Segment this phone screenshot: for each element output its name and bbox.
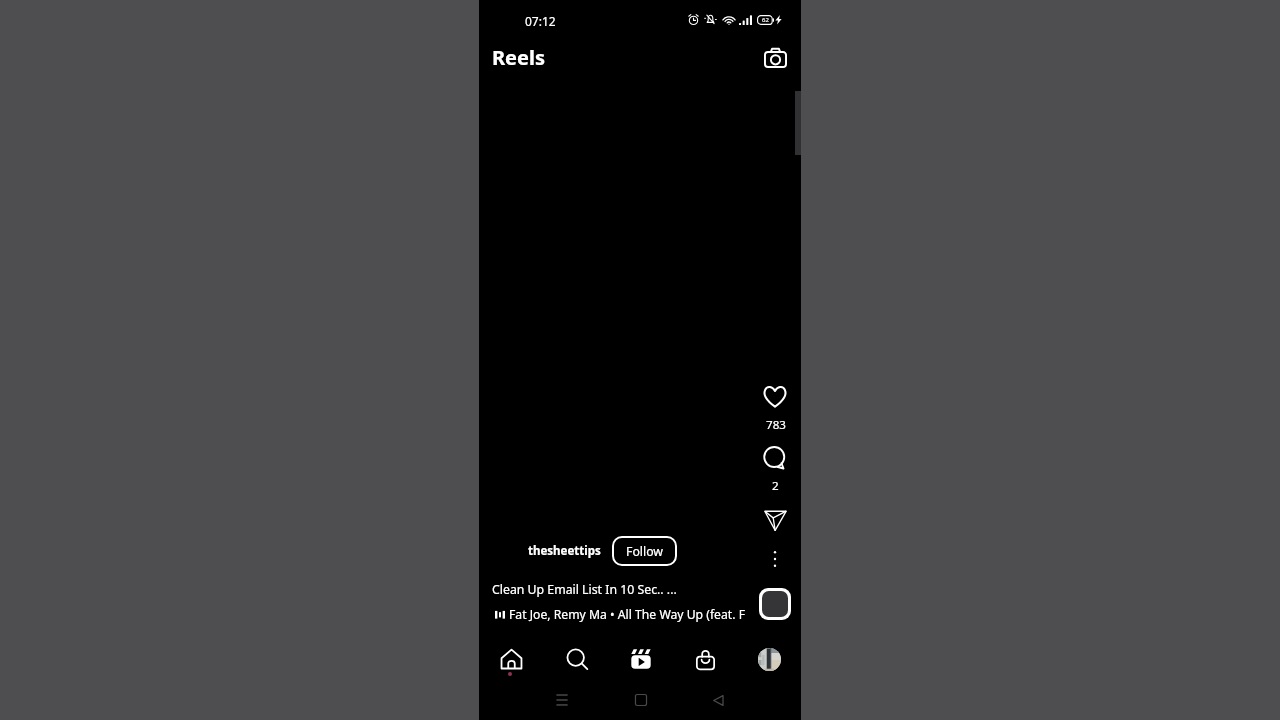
staticText: 62	[762, 16, 769, 24]
staticText: 07:12	[525, 13, 556, 29]
staticText: 2	[772, 478, 779, 494]
button[interactable]: Reels	[609, 637, 673, 681]
staticText: Fat Joe, Remy Ma • All The Way Up (feat.…	[509, 606, 745, 623]
button[interactable]: thesheettips	[528, 536, 601, 566]
button[interactable]: Audio page	[759, 588, 791, 620]
button[interactable]: Like	[763, 385, 787, 408]
button[interactable]: Search	[544, 637, 609, 681]
button[interactable]: Home	[479, 637, 544, 681]
button[interactable]: Share	[764, 510, 787, 531]
button[interactable]: Follow	[612, 536, 677, 566]
staticText: thesheettips	[528, 543, 601, 559]
button[interactable]: Comment	[763, 446, 788, 471]
staticText: Reels	[492, 44, 545, 71]
button[interactable]: Clean Up Email List In 10 Sec.. ...	[492, 581, 677, 598]
staticText: Clean Up Email List In 10 Sec.. ...	[492, 581, 677, 598]
staticText: Follow	[626, 543, 664, 560]
button[interactable]: Recent apps	[542, 685, 580, 715]
button[interactable]: Back	[699, 685, 737, 715]
button[interactable]: Profile	[737, 637, 801, 681]
button[interactable]: Fat Joe, Remy Ma • All The Way Up (feat.…	[495, 606, 745, 623]
button[interactable]: Home	[621, 685, 659, 715]
button[interactable]: Shop	[673, 637, 737, 681]
button[interactable]: Camera	[762, 45, 788, 71]
button[interactable]: More options	[768, 549, 782, 569]
staticText: 783	[766, 417, 786, 433]
